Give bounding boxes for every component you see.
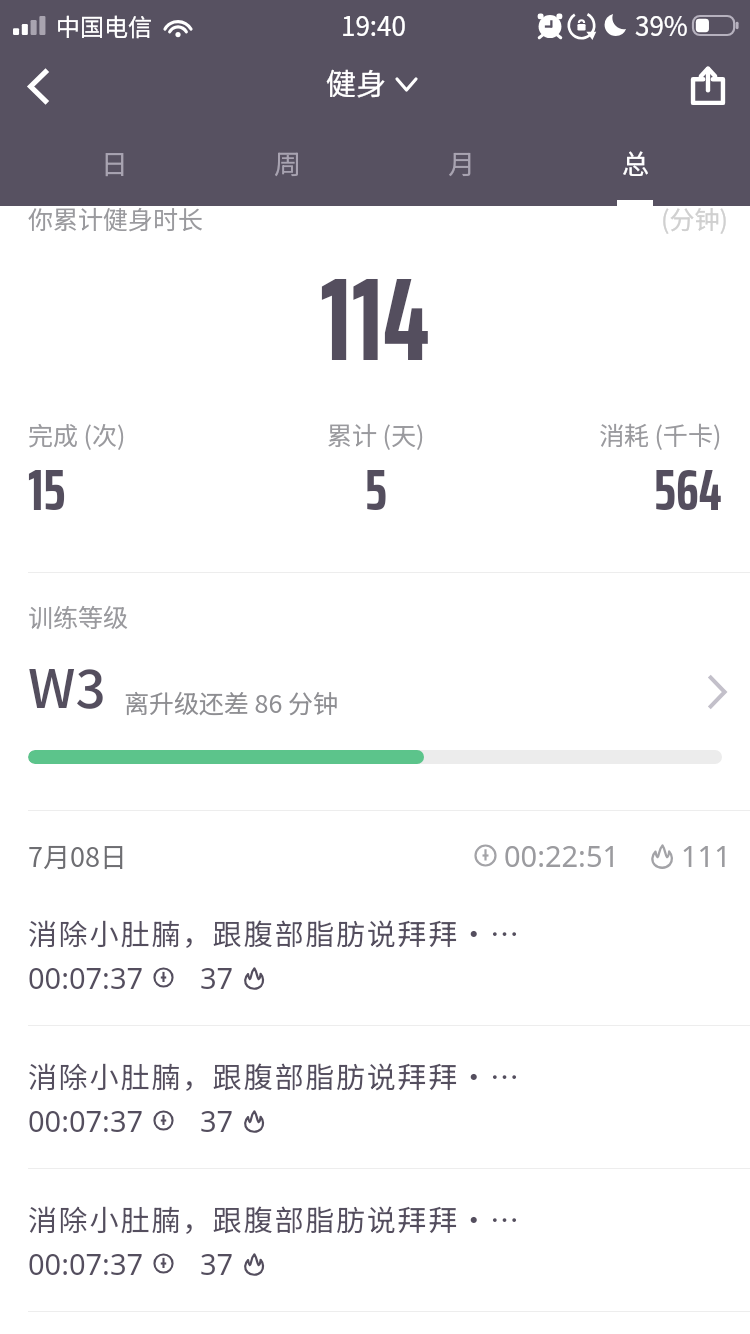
button[interactable]: 月 [374,130,548,206]
staticText: 00:07:37 [28,1101,144,1140]
button[interactable]: Back [0,50,78,130]
button[interactable]: 总 [548,130,722,206]
staticText: 消耗 (千卡) [599,416,722,452]
staticText: 离升级还差 86 分钟 [124,684,338,720]
staticText: 总 [622,143,649,182]
staticText: 111 [681,836,731,875]
button[interactable]: 消除小肚腩，跟腹部脂肪说拜拜·… [0,1309,750,1334]
staticText: 39% [635,6,688,44]
staticText: 564 [654,444,722,535]
staticText: 00:07:37 [28,1244,144,1283]
staticText: 训练等级 [28,598,129,634]
staticText: 15 [28,444,66,535]
staticText: (分钟) [661,200,728,236]
button[interactable]: 消除小肚腩，跟腹部脂肪说拜拜·… [0,1023,750,1166]
staticText: 消除小肚腩，跟腹部脂肪说拜拜·… [28,911,521,953]
staticText: 日 [101,143,128,182]
staticText: 健身 [326,60,386,103]
staticText: 37 [200,958,234,997]
staticText: 37 [200,1244,234,1283]
staticText: 中国电信 [56,8,152,43]
staticText: 114 [320,226,430,412]
staticText: 7月08日 [28,836,127,875]
staticText: 你累计健身时长 [28,200,204,236]
staticText: 累计 (天) [327,416,425,452]
button[interactable]: 消除小肚腩，跟腹部脂肪说拜拜·… [0,880,750,1023]
staticText: 周 [274,143,301,182]
button[interactable]: 周 [201,130,374,206]
button[interactable]: 消除小肚腩，跟腹部脂肪说拜拜·… [0,1166,750,1309]
staticText: 完成 (次) [28,416,126,452]
button[interactable]: Share [666,50,750,130]
staticText: 37 [200,1101,234,1140]
staticText: 19:40 [341,6,406,44]
staticText: 00:22:51 [504,836,620,875]
staticText: 00:07:37 [28,958,144,997]
button[interactable]: 健身 [326,60,416,103]
button[interactable]: 日 [28,130,201,206]
staticText: 月 [448,143,475,182]
staticText: 消除小肚腩，跟腹部脂肪说拜拜·… [28,1197,521,1239]
button[interactable]: 训练等级 [0,573,750,810]
staticText: 5 [365,444,387,535]
staticText: 消除小肚腩，跟腹部脂肪说拜拜·… [28,1054,521,1096]
staticText: W3 [28,647,106,724]
